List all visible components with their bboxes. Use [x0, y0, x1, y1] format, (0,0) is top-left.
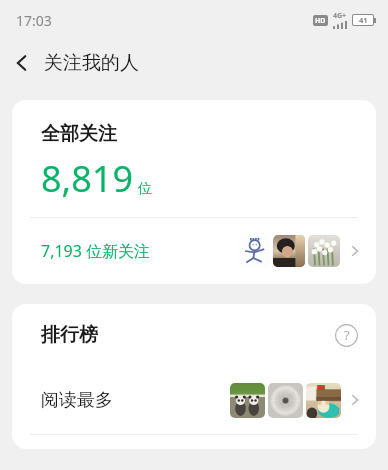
staticText: 17:03: [16, 11, 52, 30]
button[interactable]: Help: [329, 318, 363, 352]
button[interactable]: 7,193 位新关注: [12, 218, 376, 284]
staticText: 7,193 位新关注: [41, 240, 151, 262]
staticText: ?: [344, 326, 350, 344]
button[interactable]: 阅读最多: [12, 366, 376, 434]
staticText: 阅读最多: [41, 389, 113, 412]
staticText: 位: [138, 180, 152, 198]
staticText: HD: [315, 16, 326, 26]
staticText: 8,819: [41, 154, 134, 203]
staticText: 排行榜: [41, 323, 98, 347]
button[interactable]: Back: [0, 41, 44, 85]
staticText: 4G+: [333, 11, 347, 21]
staticText: 41: [359, 15, 368, 25]
staticText: 关注我的人: [44, 51, 139, 75]
staticText: 全部关注: [41, 122, 117, 146]
